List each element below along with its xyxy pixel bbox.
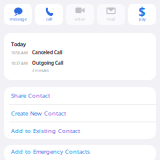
staticText: 10:56 AM xyxy=(11,50,28,55)
staticText: Canceled Call xyxy=(32,49,62,56)
button[interactable]: Add to Emergency Contacts xyxy=(4,145,156,158)
button[interactable]: mail xyxy=(97,4,125,25)
button[interactable]: video xyxy=(66,4,94,25)
staticText: Create New Contact xyxy=(11,109,66,117)
staticText: Share Contact xyxy=(11,91,50,99)
button[interactable]: message xyxy=(4,4,32,25)
staticText: Outgoing Call xyxy=(32,60,63,66)
staticText: Add to Existing Contact xyxy=(11,127,80,135)
staticText: video xyxy=(74,16,85,22)
staticText: pay xyxy=(138,16,145,22)
staticText: Add to Emergency Contacts xyxy=(11,147,90,155)
button[interactable]: Create New Contact xyxy=(4,105,156,122)
staticText: mail xyxy=(107,16,115,22)
staticText: 10:37 AM xyxy=(11,60,28,66)
button[interactable]: Share Contact xyxy=(4,87,156,104)
button[interactable]: call xyxy=(35,4,63,25)
staticText: Today xyxy=(11,40,26,48)
button[interactable]: Add to Existing Contact xyxy=(4,122,156,139)
staticText: 3 minutes xyxy=(32,68,49,73)
staticText: $ xyxy=(138,4,145,20)
button[interactable]: 10:56 AM xyxy=(4,49,156,56)
staticText: call xyxy=(46,16,52,22)
button[interactable]: pay xyxy=(128,4,156,25)
staticText: message xyxy=(9,16,26,22)
button[interactable]: 10:37 AM xyxy=(4,60,156,73)
